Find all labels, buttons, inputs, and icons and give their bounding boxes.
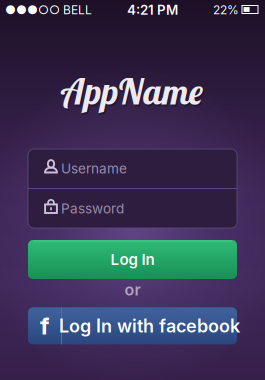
staticText: 22% (213, 3, 239, 17)
staticText: ●●●○○ BELL (5, 3, 92, 17)
staticText: f (40, 311, 49, 340)
staticText: AppName (62, 68, 203, 113)
staticText: Log In with facebook (59, 315, 240, 337)
staticText: Password (61, 200, 124, 217)
staticText: AppName (63, 70, 204, 115)
button[interactable]: Log In (28, 240, 237, 279)
button[interactable]: f (28, 307, 237, 344)
staticText: 4:21 PM (127, 2, 178, 18)
staticText: Log In (110, 250, 154, 269)
staticText: or (124, 280, 140, 299)
staticText: Username (61, 160, 127, 177)
